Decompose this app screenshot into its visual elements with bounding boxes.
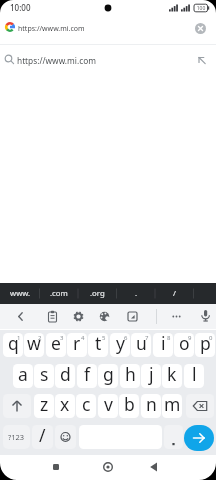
- button[interactable]: j: [141, 364, 161, 388]
- button[interactable]: /: [155, 283, 193, 304]
- button[interactable]: d: [55, 364, 75, 388]
- staticText: z: [40, 394, 49, 416]
- staticText: .: [135, 288, 138, 299]
- staticText: i: [161, 333, 166, 355]
- staticText: o: [179, 333, 190, 355]
- button[interactable]: [44, 308, 61, 325]
- button[interactable]: c: [76, 394, 96, 418]
- staticText: e: [51, 333, 61, 355]
- button[interactable]: .: [117, 283, 155, 304]
- staticText: 9: [188, 334, 192, 342]
- staticText: w: [27, 333, 41, 355]
- button[interactable]: o: [174, 333, 194, 357]
- staticText: m: [164, 394, 181, 416]
- button[interactable]: a: [13, 364, 33, 388]
- staticText: 4: [81, 334, 85, 342]
- staticText: b: [124, 394, 135, 416]
- button[interactable]: [142, 456, 166, 478]
- staticText: .org: [90, 288, 105, 299]
- staticText: x: [60, 394, 70, 416]
- button[interactable]: n: [141, 394, 161, 418]
- staticText: https://www.mi.com: [18, 24, 85, 34]
- button[interactable]: [12, 308, 29, 325]
- button[interactable]: [44, 456, 68, 478]
- button[interactable]: u: [131, 333, 151, 357]
- button[interactable]: s: [34, 364, 54, 388]
- button[interactable]: [168, 308, 185, 325]
- staticText: 6: [124, 334, 128, 342]
- staticText: www.: [10, 288, 31, 299]
- staticText: 10:00: [10, 2, 31, 13]
- button[interactable]: t: [88, 333, 108, 357]
- staticText: .com: [50, 288, 68, 299]
- button[interactable]: /: [32, 425, 53, 449]
- button[interactable]: h: [120, 364, 140, 388]
- button[interactable]: [0, 45, 216, 76]
- button[interactable]: [96, 456, 120, 478]
- staticText: r: [73, 333, 81, 355]
- button[interactable]: www.: [1, 283, 39, 304]
- staticText: g: [103, 364, 114, 386]
- staticText: f: [84, 364, 91, 386]
- button[interactable]: [164, 425, 183, 449]
- staticText: s: [40, 364, 49, 386]
- button[interactable]: [0, 16, 216, 45]
- button[interactable]: l: [184, 364, 204, 388]
- staticText: j: [149, 364, 154, 386]
- staticText: c: [82, 394, 91, 416]
- staticText: h: [125, 364, 136, 386]
- staticText: https://www.mi.com: [17, 55, 96, 66]
- button[interactable]: r: [67, 333, 87, 357]
- staticText: v: [104, 394, 113, 416]
- button[interactable]: p: [195, 333, 215, 357]
- staticText: 3: [60, 334, 64, 342]
- button[interactable]: [96, 308, 113, 325]
- button[interactable]: z: [34, 394, 54, 418]
- staticText: 5: [102, 334, 106, 342]
- staticText: y: [116, 333, 125, 355]
- button[interactable]: f: [77, 364, 97, 388]
- staticText: l: [192, 364, 197, 386]
- staticText: t: [95, 333, 102, 355]
- button[interactable]: [186, 394, 214, 418]
- staticText: p: [200, 333, 211, 355]
- staticText: ?123: [8, 432, 25, 442]
- staticText: n: [146, 394, 157, 416]
- staticText: d: [60, 364, 71, 386]
- staticText: a: [18, 364, 28, 386]
- button[interactable]: v: [98, 394, 118, 418]
- button[interactable]: [195, 23, 206, 34]
- staticText: u: [136, 333, 147, 355]
- staticText: 100: [195, 5, 207, 12]
- button[interactable]: [124, 308, 141, 325]
- staticText: 1: [17, 334, 21, 342]
- staticText: 8: [167, 334, 171, 342]
- button[interactable]: q: [3, 333, 23, 357]
- button[interactable]: e: [46, 333, 66, 357]
- staticText: q: [8, 333, 19, 355]
- button[interactable]: x: [55, 394, 75, 418]
- button[interactable]: .com: [40, 283, 78, 304]
- staticText: /: [173, 288, 176, 299]
- button[interactable]: m: [162, 394, 182, 418]
- button[interactable]: k: [162, 364, 182, 388]
- button[interactable]: [55, 425, 76, 449]
- button[interactable]: [3, 394, 31, 418]
- staticText: k: [167, 364, 177, 386]
- button[interactable]: ?123: [3, 425, 30, 449]
- button[interactable]: i: [153, 333, 173, 357]
- button[interactable]: w: [24, 333, 44, 357]
- button[interactable]: [197, 307, 214, 325]
- button[interactable]: [196, 54, 207, 65]
- button[interactable]: b: [119, 394, 139, 418]
- button[interactable]: [70, 308, 87, 325]
- staticText: 7: [145, 334, 149, 342]
- button[interactable]: g: [98, 364, 118, 388]
- staticText: /: [39, 425, 46, 447]
- staticText: 0: [209, 334, 213, 342]
- button[interactable]: y: [110, 333, 130, 357]
- button[interactable]: [184, 425, 214, 451]
- button[interactable]: .org: [78, 283, 116, 304]
- staticText: 2: [38, 334, 42, 342]
